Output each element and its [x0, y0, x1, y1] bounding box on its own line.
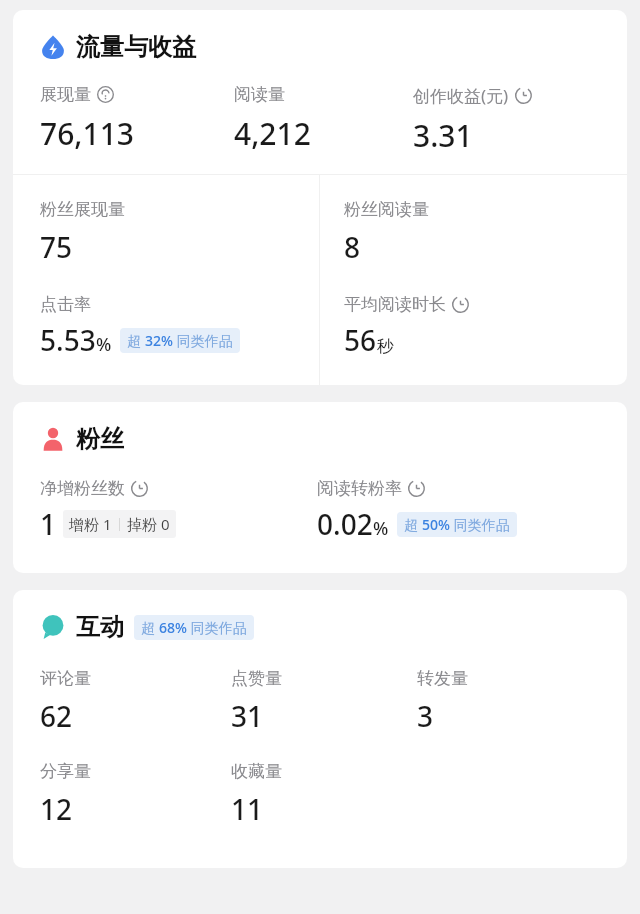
staticText: 互动 [76, 612, 124, 642]
staticText: 56 [344, 321, 377, 359]
staticText: 3 [417, 697, 434, 735]
staticText: % [373, 516, 389, 541]
staticText: 1 [40, 505, 57, 543]
staticText: 8 [344, 228, 361, 266]
staticText: 同类作品 [187, 618, 247, 637]
staticText: 阅读量 [234, 84, 285, 105]
staticText: 点击率 [40, 294, 91, 315]
staticText: 76,113 [40, 113, 134, 154]
staticText: 收藏量 [231, 761, 282, 782]
staticText: 超 [404, 515, 422, 534]
staticText: 粉丝阅读量 [344, 199, 429, 220]
button[interactable]: 互动 [13, 590, 627, 868]
staticText: % [96, 332, 112, 357]
staticText: 阅读转粉率 [317, 478, 402, 499]
staticText: 评论量 [40, 668, 91, 689]
staticText: 62 [40, 697, 73, 735]
button[interactable]: 粉丝 [13, 402, 627, 573]
staticText: 粉丝 [76, 424, 124, 454]
button[interactable]: 流量与收益 [13, 10, 627, 385]
staticText: 同类作品 [173, 331, 233, 350]
staticText: 3.31 [413, 115, 473, 156]
staticText: 创作收益(元) [413, 84, 509, 107]
staticText: 分享量 [40, 761, 91, 782]
staticText: 0.02 [317, 505, 373, 543]
staticText: 50% [422, 515, 450, 534]
staticText: 流量与收益 [76, 32, 196, 62]
staticText: 超 [127, 331, 145, 350]
staticText: 31 [231, 697, 264, 735]
staticText: 平均阅读时长 [344, 294, 446, 315]
staticText: 12 [40, 790, 73, 828]
staticText: 增粉 1 [69, 514, 112, 534]
staticText: 68% [159, 618, 187, 637]
staticText: 同类作品 [450, 515, 510, 534]
staticText: 掉粉 0 [127, 514, 170, 534]
staticText: 点赞量 [231, 668, 282, 689]
staticText: 秒 [377, 336, 394, 357]
staticText: 4,212 [234, 113, 311, 154]
staticText: 5.53 [40, 321, 96, 359]
staticText: 32% [145, 331, 173, 350]
staticText: 超 [141, 618, 159, 637]
staticText: 净增粉丝数 [40, 478, 125, 499]
staticText: 75 [40, 228, 73, 266]
staticText: 11 [231, 790, 264, 828]
staticText: 展现量 [40, 84, 91, 105]
staticText: 粉丝展现量 [40, 199, 125, 220]
staticText: 转发量 [417, 668, 468, 689]
